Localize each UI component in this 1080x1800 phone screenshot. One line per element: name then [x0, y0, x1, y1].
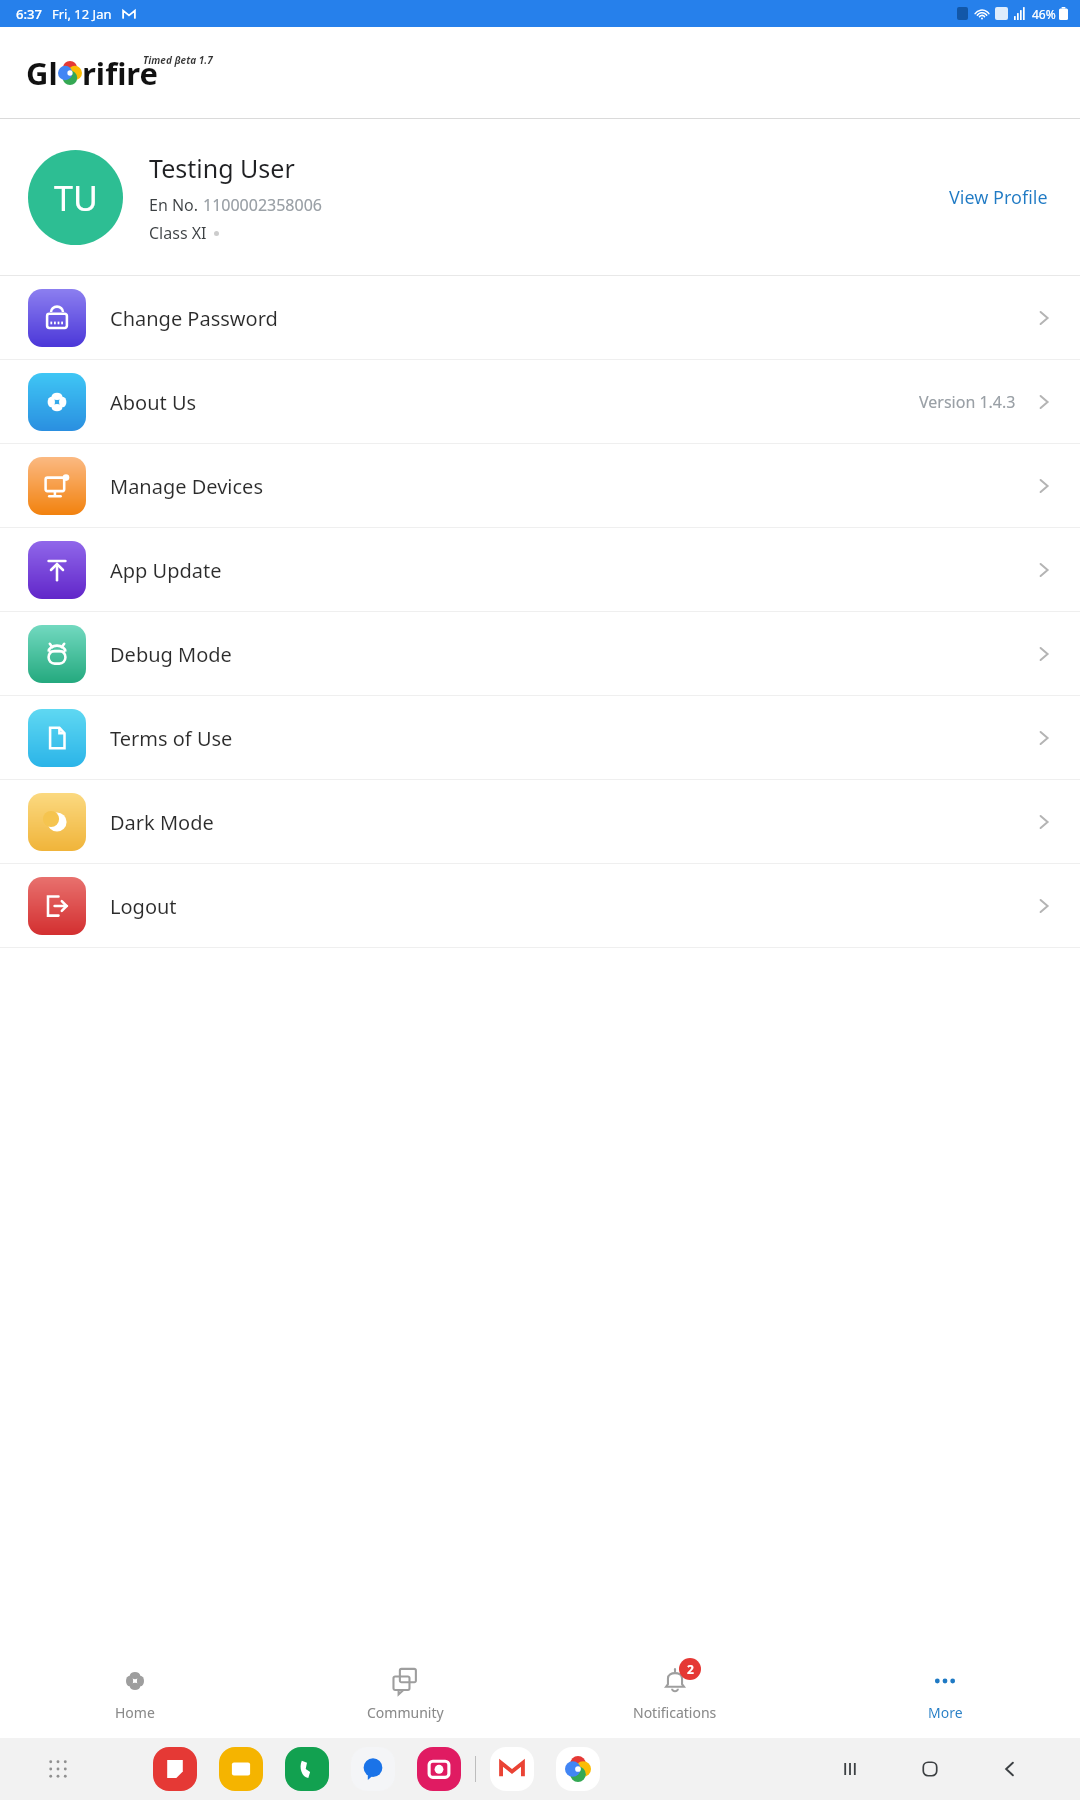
- button[interactable]: Debug Mode: [0, 612, 1080, 696]
- staticText: About Us: [110, 389, 197, 416]
- staticText: TU: [54, 175, 98, 221]
- button[interactable]: [351, 1747, 395, 1791]
- button[interactable]: Home: [918, 1757, 942, 1781]
- staticText: Logout: [110, 893, 177, 920]
- staticText: Terms of Use: [110, 725, 233, 752]
- staticText: App Update: [110, 557, 222, 584]
- button[interactable]: [490, 1747, 534, 1791]
- staticText: Testing User: [149, 151, 295, 185]
- staticText: View Profile: [949, 185, 1048, 210]
- staticText: Change Password: [110, 305, 278, 332]
- staticText: Home: [115, 1703, 155, 1722]
- staticText: 1100002358006: [203, 194, 322, 216]
- button[interactable]: Back: [998, 1757, 1022, 1781]
- button[interactable]: [285, 1747, 329, 1791]
- staticText: Notifications: [633, 1703, 717, 1722]
- staticText: Manage Devices: [110, 473, 263, 500]
- button[interactable]: Dark Mode: [0, 780, 1080, 864]
- staticText: Gl: [26, 52, 58, 94]
- button[interactable]: Logout: [0, 864, 1080, 948]
- staticText: rifire: [82, 52, 159, 94]
- staticText: 46%: [1032, 6, 1056, 22]
- button[interactable]: Community: [270, 1648, 540, 1738]
- staticText: Class XI: [149, 222, 207, 244]
- staticText: 6:37: [16, 5, 42, 23]
- button[interactable]: [153, 1747, 197, 1791]
- button[interactable]: App Update: [0, 528, 1080, 612]
- button[interactable]: Terms of Use: [0, 696, 1080, 780]
- button[interactable]: [417, 1747, 461, 1791]
- button[interactable]: [219, 1747, 263, 1791]
- staticText: Version 1.4.3: [919, 391, 1016, 413]
- button[interactable]: More: [810, 1648, 1080, 1738]
- staticText: Dark Mode: [110, 809, 214, 836]
- button[interactable]: About Us: [0, 360, 1080, 444]
- staticText: Community: [367, 1703, 444, 1722]
- staticText: 2: [687, 1661, 694, 1677]
- staticText: Timed βeta 1.7: [143, 53, 213, 67]
- button[interactable]: Change Password: [0, 276, 1080, 360]
- button[interactable]: View Profile: [945, 179, 1052, 216]
- button[interactable]: Home: [0, 1648, 270, 1738]
- staticText: En No.: [149, 194, 203, 216]
- button[interactable]: Manage Devices: [0, 444, 1080, 528]
- button[interactable]: [556, 1747, 600, 1791]
- staticText: Fri, 12 Jan: [52, 5, 112, 23]
- button[interactable]: Recents: [838, 1757, 862, 1781]
- button[interactable]: 2: [540, 1648, 810, 1738]
- staticText: More: [928, 1703, 963, 1722]
- button[interactable]: All apps: [45, 1756, 71, 1782]
- staticText: Debug Mode: [110, 641, 232, 668]
